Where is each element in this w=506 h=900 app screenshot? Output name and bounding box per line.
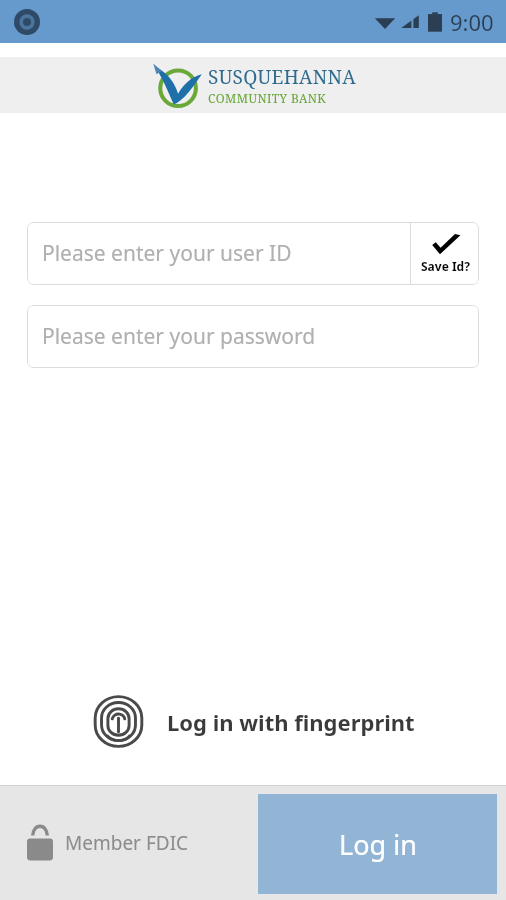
- button[interactable]: Log in with fingerprint: [0, 695, 506, 748]
- staticText: Member FDIC: [65, 830, 189, 856]
- button[interactable]: Please enter your user ID: [27, 222, 410, 285]
- staticText: Please enter your user ID: [42, 239, 292, 268]
- staticText: Save Id?: [421, 258, 470, 274]
- staticText: COMMUNITY BANK: [208, 90, 327, 106]
- button[interactable]: Please enter your password: [27, 305, 479, 368]
- staticText: 9:00: [450, 7, 494, 37]
- staticText: Log in with fingerprint: [167, 707, 415, 737]
- button[interactable]: Save Id: [411, 222, 479, 285]
- staticText: Log in: [339, 826, 417, 863]
- staticText: Please enter your password: [42, 322, 316, 351]
- button[interactable]: Log in: [258, 794, 497, 894]
- button[interactable]: Member FDIC: [27, 824, 189, 862]
- staticText: SUSQUEHANNA: [208, 64, 357, 90]
